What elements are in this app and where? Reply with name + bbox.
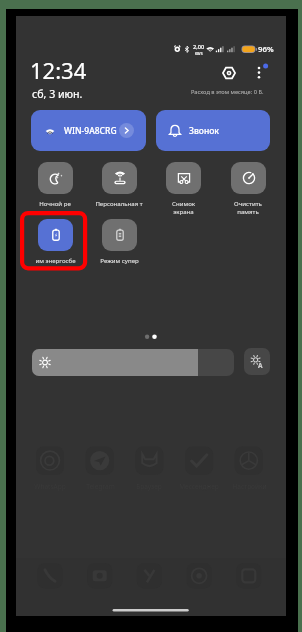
staticText: KB/S — [195, 51, 203, 56]
button[interactable]: Settings — [216, 60, 241, 85]
staticText: Звонок — [189, 125, 220, 137]
button[interactable]: Снимок экрана — [151, 162, 215, 216]
staticText: 96% — [258, 44, 274, 55]
button[interactable]: More options — [248, 60, 272, 84]
button[interactable]: Brightness — [32, 349, 234, 376]
staticText: 12:34 — [30, 55, 87, 85]
button[interactable]: Auto brightness — [244, 348, 270, 375]
button[interactable]: Очистить память — [216, 162, 280, 216]
button[interactable]: Звонок — [156, 110, 270, 151]
button[interactable]: WIN-9A8CRG — [31, 110, 146, 151]
button[interactable]: им энергосбе — [23, 219, 87, 264]
button[interactable]: Персональная т — [87, 162, 151, 207]
staticText: Персональная т — [95, 199, 143, 207]
staticText: сб, 3 июн. — [32, 87, 83, 101]
staticText: им энергосбе — [35, 256, 76, 264]
staticText: A — [258, 361, 263, 370]
button[interactable]: Режим супер — [87, 219, 151, 264]
staticText: 2,00 — [193, 43, 205, 51]
staticText: Режим супер — [100, 256, 139, 264]
staticText: Расход в этом месяце: 0 Б. — [191, 88, 264, 96]
button[interactable]: Ночной ре — [23, 162, 87, 207]
staticText: WIN-9A8CRG — [64, 125, 117, 137]
staticText: Ночной ре — [39, 199, 71, 207]
staticText: Снимок экрана — [172, 199, 195, 216]
staticText: Очистить память — [234, 199, 262, 216]
